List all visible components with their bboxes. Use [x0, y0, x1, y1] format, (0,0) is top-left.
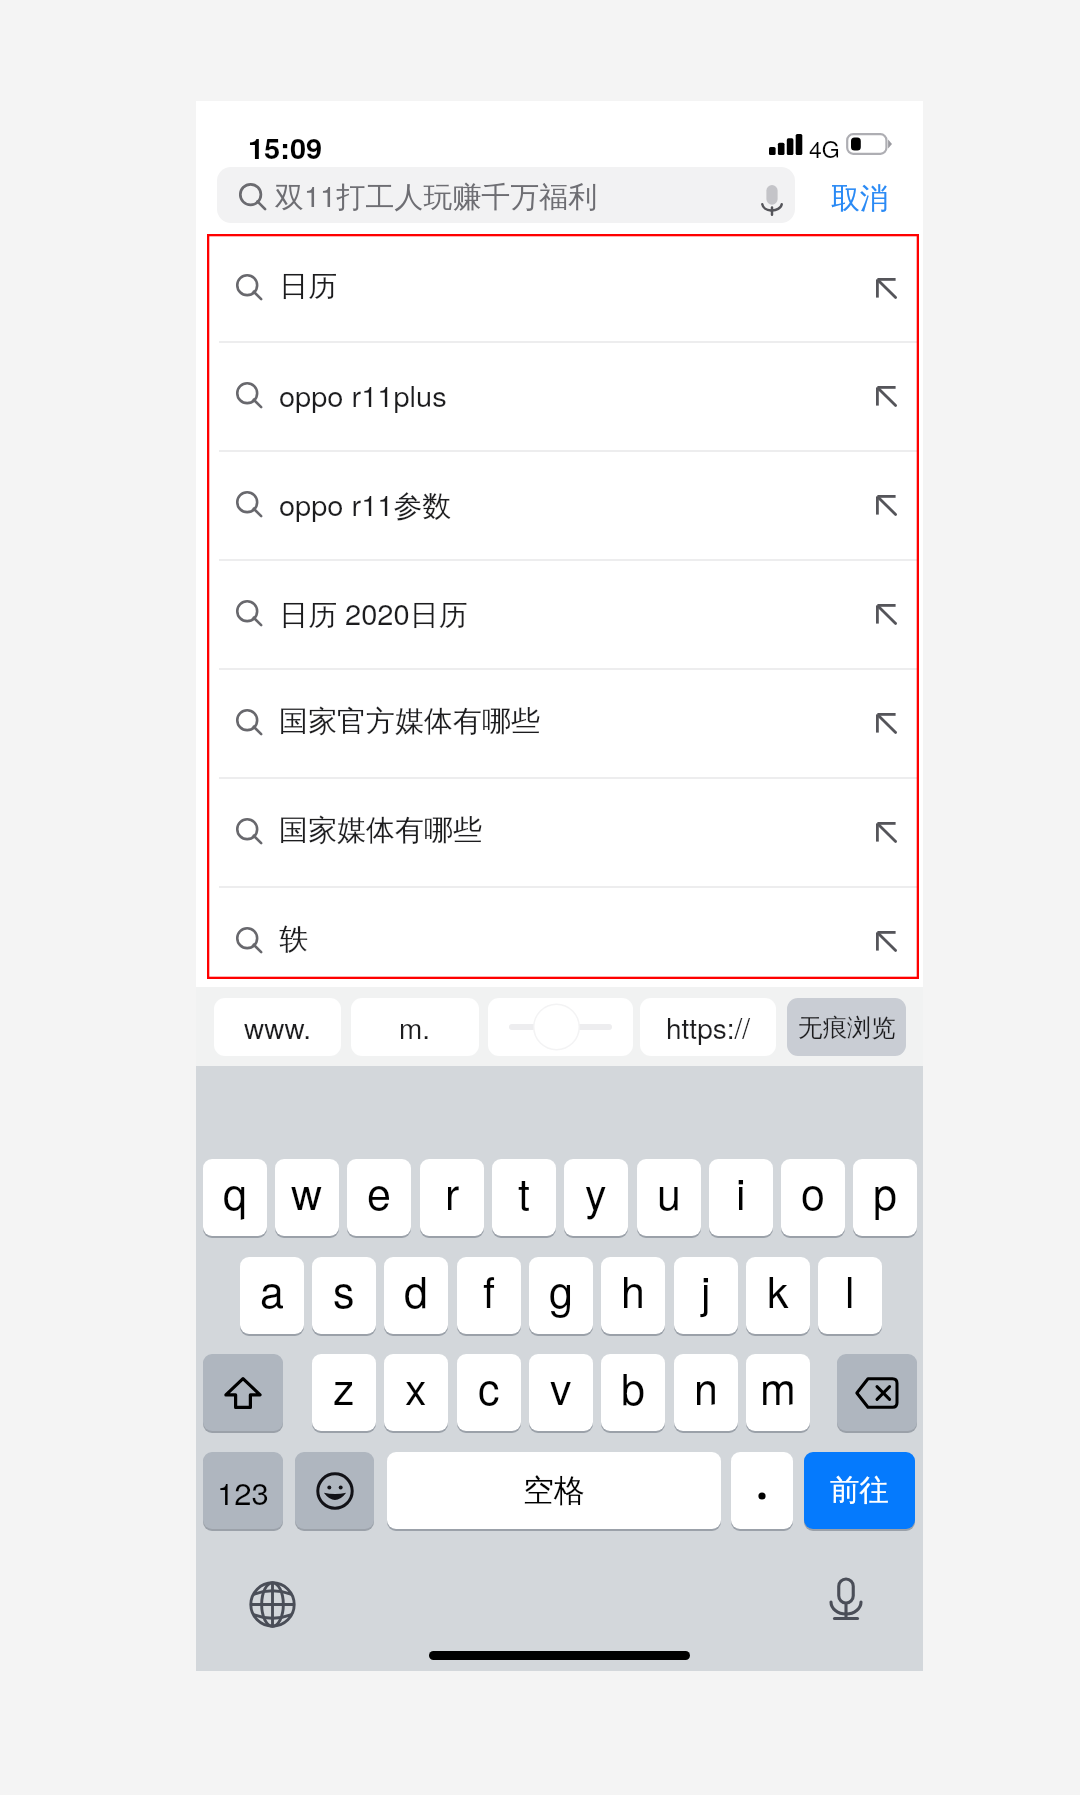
staticText: d — [404, 1259, 428, 1321]
button[interactable]: 无痕浏览 — [787, 998, 906, 1056]
staticText: oppo r11参数 — [279, 483, 452, 525]
button[interactable]: i — [709, 1159, 773, 1236]
staticText: 空格 — [523, 1471, 585, 1510]
button[interactable]: p — [853, 1159, 917, 1236]
staticText: l — [845, 1259, 855, 1321]
staticText: g — [549, 1259, 573, 1321]
button[interactable]: k — [746, 1257, 810, 1334]
staticText: n — [694, 1356, 718, 1418]
button[interactable]: Use suggestion 轶 — [866, 921, 906, 961]
staticText: 取消 — [831, 180, 889, 217]
button[interactable]: r — [420, 1159, 484, 1236]
staticText: m. — [399, 1007, 431, 1047]
button[interactable]: www. — [214, 998, 341, 1056]
staticText: y — [585, 1161, 607, 1223]
staticText: 日历 — [279, 268, 337, 305]
button[interactable]: oppo r11参数 — [207, 450, 919, 559]
staticText: m — [760, 1356, 796, 1418]
button[interactable]: Use suggestion 国家官方媒体有哪些 — [866, 703, 906, 743]
staticText: https:// — [666, 1007, 751, 1047]
button[interactable]: z — [312, 1354, 376, 1431]
button[interactable]: w — [275, 1159, 339, 1236]
staticText: p — [873, 1161, 897, 1223]
button[interactable]: 123 — [203, 1452, 283, 1529]
staticText: x — [405, 1356, 427, 1418]
button[interactable]: g — [529, 1257, 593, 1334]
button[interactable]: n — [674, 1354, 738, 1431]
staticText: 日历 2020日历 — [279, 592, 468, 634]
button[interactable]: a — [240, 1257, 304, 1334]
button[interactable]: Use suggestion 国家媒体有哪些 — [866, 812, 906, 852]
button[interactable]: Emoji — [295, 1452, 374, 1529]
staticText: f — [483, 1259, 495, 1321]
button[interactable]: q — [203, 1159, 267, 1236]
button[interactable]: h — [601, 1257, 665, 1334]
staticText: 前往 — [830, 1472, 889, 1509]
staticText: o — [801, 1161, 825, 1223]
button[interactable]: 国家官方媒体有哪些 — [207, 668, 919, 777]
staticText: z — [333, 1356, 355, 1418]
staticText: j — [701, 1259, 711, 1321]
button[interactable]: 取消 — [831, 180, 889, 217]
button[interactable]: x — [384, 1354, 448, 1431]
staticText: 双11打工人玩赚千万福利 — [275, 174, 598, 216]
staticText: c — [478, 1356, 500, 1418]
button[interactable]: v — [529, 1354, 593, 1431]
button[interactable]: u — [637, 1159, 701, 1236]
button[interactable]: Voice search — [752, 180, 791, 219]
staticText: www. — [244, 1007, 312, 1047]
button[interactable]: Use suggestion oppo r11参数 — [866, 485, 906, 525]
staticText: oppo r11plus — [279, 374, 447, 416]
button[interactable]: Dictation — [818, 1572, 874, 1628]
staticText: v — [550, 1356, 572, 1418]
button[interactable]: t — [492, 1159, 556, 1236]
button[interactable]: Backspace — [837, 1354, 917, 1431]
button[interactable]: https:// — [640, 998, 776, 1056]
staticText: 轶 — [279, 921, 308, 958]
button[interactable]: j — [674, 1257, 738, 1334]
button[interactable] — [488, 998, 633, 1056]
staticText: q — [223, 1161, 247, 1223]
button[interactable]: f — [457, 1257, 521, 1334]
staticText: e — [367, 1161, 391, 1223]
button[interactable]: c — [457, 1354, 521, 1431]
button[interactable]: 国家媒体有哪些 — [207, 777, 919, 886]
staticText: 国家官方媒体有哪些 — [279, 703, 540, 740]
staticText: h — [621, 1259, 645, 1321]
staticText: 15:09 — [248, 126, 323, 168]
staticText: i — [736, 1161, 746, 1223]
staticText: s — [333, 1259, 355, 1321]
button[interactable]: 空格 — [387, 1452, 721, 1529]
button[interactable]: 日历 — [207, 234, 919, 341]
button[interactable]: 日历 2020日历 — [207, 559, 919, 668]
button[interactable]: Switch keyboard — [244, 1576, 300, 1632]
button[interactable]: b — [601, 1354, 665, 1431]
button[interactable]: Use suggestion 日历 — [866, 268, 906, 308]
staticText: u — [657, 1161, 681, 1223]
button[interactable]: e — [347, 1159, 411, 1236]
button[interactable]: m — [746, 1354, 810, 1431]
button[interactable]: 双11打工人玩赚千万福利 — [217, 167, 795, 223]
button[interactable]: 前往 — [804, 1452, 915, 1529]
button[interactable]: Use suggestion oppo r11plus — [866, 376, 906, 416]
button[interactable]: y — [564, 1159, 628, 1236]
staticText: r — [445, 1161, 460, 1223]
staticText: k — [767, 1259, 789, 1321]
button[interactable]: 轶 — [207, 886, 919, 979]
button[interactable]: l — [818, 1257, 882, 1334]
button[interactable]: Shift — [203, 1354, 283, 1431]
button[interactable] — [731, 1452, 793, 1529]
staticText: 无痕浏览 — [798, 1012, 896, 1043]
button[interactable]: s — [312, 1257, 376, 1334]
button[interactable]: o — [781, 1159, 845, 1236]
button[interactable]: m. — [351, 998, 479, 1056]
staticText: 123 — [217, 1469, 269, 1513]
staticText: 4G — [809, 132, 840, 165]
staticText: 国家媒体有哪些 — [279, 812, 482, 849]
staticText: w — [291, 1161, 323, 1223]
staticText: t — [518, 1161, 530, 1223]
button[interactable]: Use suggestion 日历 2020日历 — [866, 594, 906, 634]
staticText: b — [621, 1356, 645, 1418]
button[interactable]: oppo r11plus — [207, 341, 919, 450]
button[interactable]: d — [384, 1257, 448, 1334]
